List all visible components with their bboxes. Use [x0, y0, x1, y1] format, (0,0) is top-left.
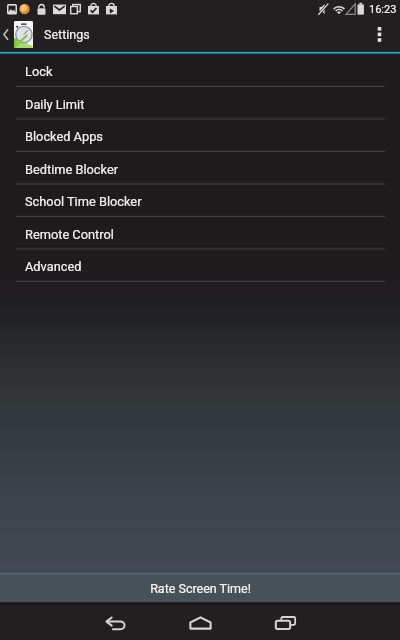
- button[interactable]: Daily Limit: [0, 88, 400, 121]
- staticText: 16:23: [369, 3, 397, 16]
- button[interactable]: Recent apps: [243, 605, 328, 640]
- button[interactable]: Back: [73, 605, 158, 640]
- button[interactable]: Remote Control: [0, 218, 400, 251]
- staticText: Lock: [25, 64, 53, 79]
- button[interactable]: Navigate up: [0, 18, 35, 51]
- button[interactable]: Lock: [0, 55, 400, 88]
- other: Navigate up: [3, 29, 8, 40]
- button[interactable]: More options: [358, 18, 400, 51]
- button[interactable]: Rate Screen Time!: [0, 575, 400, 602]
- button[interactable]: Home: [158, 605, 243, 640]
- button[interactable]: Bedtime Blocker: [0, 153, 400, 186]
- staticText: Settings: [44, 27, 90, 42]
- staticText: Blocked Apps: [25, 129, 103, 144]
- staticText: Rate Screen Time!: [150, 581, 251, 596]
- staticText: Daily Limit: [25, 97, 85, 112]
- button[interactable]: School Time Blocker: [0, 185, 400, 218]
- staticText: School Time Blocker: [25, 194, 142, 209]
- staticText: Bedtime Blocker: [25, 162, 119, 177]
- button[interactable]: Blocked Apps: [0, 120, 400, 153]
- staticText: Advanced: [25, 259, 82, 274]
- button[interactable]: Advanced: [0, 250, 400, 283]
- staticText: Remote Control: [25, 227, 114, 242]
